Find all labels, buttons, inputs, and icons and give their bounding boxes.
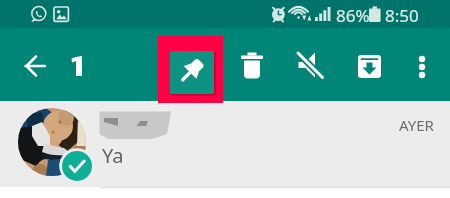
button[interactable]: Pin [170,51,214,94]
button[interactable]: More options [402,52,442,92]
staticText: 86% [336,4,370,27]
staticText: AYER [399,115,434,135]
staticText: 8:50 [385,4,419,27]
button[interactable]: Mute [296,52,336,92]
button[interactable]: Delete [232,52,272,92]
button[interactable]: Back [16,46,56,86]
staticText: Ya [102,142,124,169]
button[interactable]: Archive [354,52,394,92]
